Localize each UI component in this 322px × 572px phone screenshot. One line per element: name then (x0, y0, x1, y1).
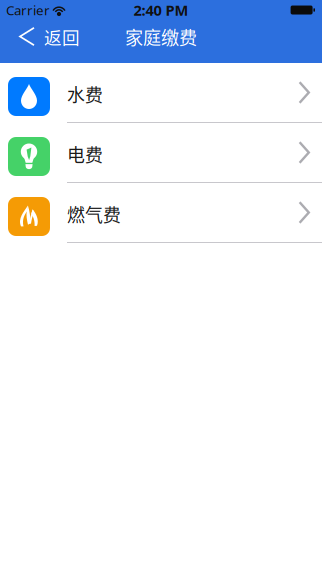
staticText: 电费 (67, 141, 103, 167)
staticText: 2:40 PM (133, 0, 188, 20)
staticText: 水费 (67, 81, 103, 107)
button[interactable]: 水费 (0, 63, 322, 123)
staticText: 燃气费 (67, 201, 121, 227)
staticText: 家庭缴费 (125, 23, 197, 50)
staticText: 返回 (44, 24, 80, 49)
button[interactable]: 燃气费 (0, 183, 322, 243)
button[interactable]: 返回 (0, 20, 90, 53)
staticText: Carrier (6, 1, 50, 19)
button[interactable]: 电费 (0, 123, 322, 183)
